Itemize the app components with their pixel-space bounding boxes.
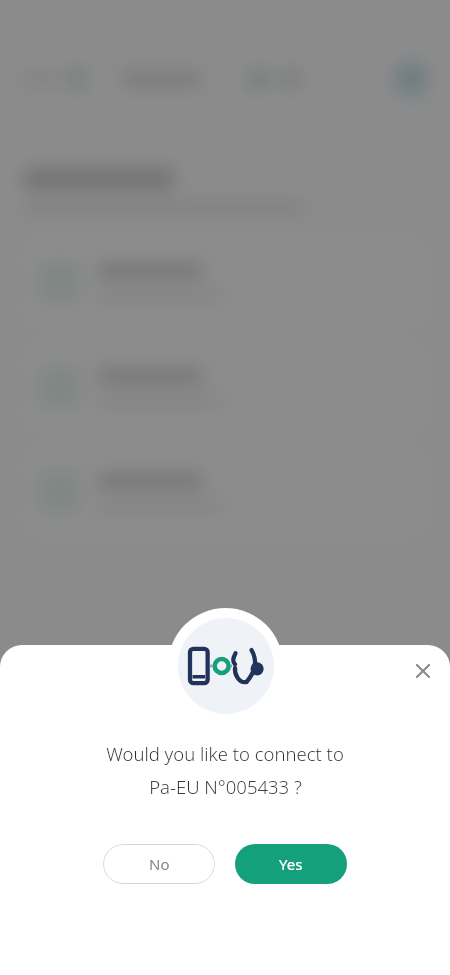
button[interactable] xyxy=(22,446,428,538)
staticText: Pa-EU N°005433 ? xyxy=(149,774,302,799)
button[interactable]: Close xyxy=(405,653,441,689)
button[interactable]: Yes xyxy=(235,844,347,884)
button[interactable] xyxy=(22,236,428,328)
staticText: No xyxy=(149,854,170,874)
staticText: Would you like to connect to xyxy=(106,741,344,766)
button[interactable] xyxy=(22,341,428,433)
staticText: Yes xyxy=(279,854,303,874)
button[interactable]: No xyxy=(103,844,215,884)
